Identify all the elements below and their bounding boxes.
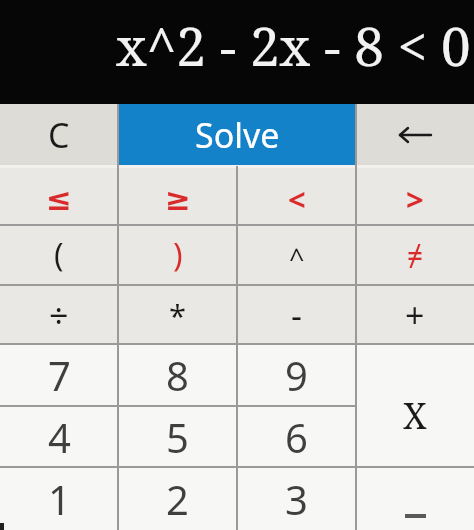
button[interactable]: 5 [118,406,237,467]
staticText: 2 [166,472,189,526]
staticText: 7 [48,348,71,402]
button[interactable]: 9 [237,344,356,406]
staticText: C [48,112,70,158]
staticText: x^2 - 2x - 8 < 0 [116,9,471,81]
staticText: < [288,178,306,220]
button[interactable]: ) [118,225,237,285]
staticText: Solve [195,112,280,158]
staticText: ^ [289,239,305,276]
button[interactable]: + [356,285,474,344]
button[interactable]: ≥ [118,166,237,225]
staticText: ≥ [165,181,191,217]
button[interactable]: Solve [118,104,356,166]
button[interactable]: 3 [237,467,356,530]
button[interactable]: ÷ [0,285,118,344]
staticText: 6 [285,410,308,464]
button[interactable]: 6 [237,406,356,467]
staticText: ÷ [49,292,69,338]
staticText: 8 [166,348,189,402]
button[interactable]: ≤ [0,166,118,225]
staticText: ) [173,233,183,277]
button[interactable]: < [237,166,356,225]
staticText: + [405,292,425,338]
button[interactable]: * [118,285,237,344]
button[interactable] [356,467,474,530]
staticText: > [406,178,424,220]
staticText: - [291,292,302,338]
button[interactable]: X [356,344,474,467]
button[interactable]: 1 [0,467,118,530]
button[interactable]: 8 [118,344,237,406]
button[interactable]: ^ [237,225,356,285]
staticText: ≠ [407,236,424,274]
button[interactable]: - [237,285,356,344]
staticText: 3 [285,472,308,526]
staticText: X [403,391,427,440]
button[interactable]: 2 [118,467,237,530]
staticText: ≤ [46,181,72,217]
staticText: 5 [166,410,189,464]
button[interactable]: 7 [0,344,118,406]
button[interactable] [356,104,474,166]
button[interactable]: ≠ [356,225,474,285]
button[interactable]: C [0,104,118,166]
button[interactable]: > [356,166,474,225]
staticText: 4 [48,410,71,464]
staticText: * [169,294,187,336]
staticText: 9 [285,348,308,402]
staticText: ( [54,233,64,277]
button[interactable]: 4 [0,406,118,467]
button[interactable]: ( [0,225,118,285]
staticText: 1 [48,472,71,526]
